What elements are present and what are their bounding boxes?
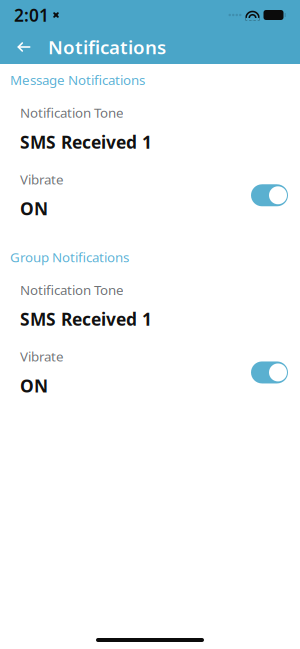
staticText: Notification Tone (20, 104, 124, 121)
staticText: 2:01 (14, 3, 49, 26)
button[interactable]: Notification Tone (0, 89, 300, 153)
button[interactable]: Back (9, 30, 39, 64)
staticText: SMS Received 1 (20, 308, 152, 331)
staticText: Notifications (48, 35, 166, 59)
staticText: Group Notifications (10, 248, 129, 266)
staticText: Notification Tone (20, 281, 124, 299)
staticText: Vibrate (20, 170, 64, 188)
staticText: ON (20, 197, 48, 220)
staticText: Vibrate (20, 348, 64, 365)
button[interactable]: Notification Tone (0, 266, 300, 331)
button[interactable]: Vibrate (0, 331, 300, 397)
button[interactable]: Vibrate (0, 153, 300, 220)
staticText: Message Notifications (10, 71, 145, 89)
staticText: ON (20, 374, 48, 397)
staticText: SMS Received 1 (20, 130, 152, 153)
